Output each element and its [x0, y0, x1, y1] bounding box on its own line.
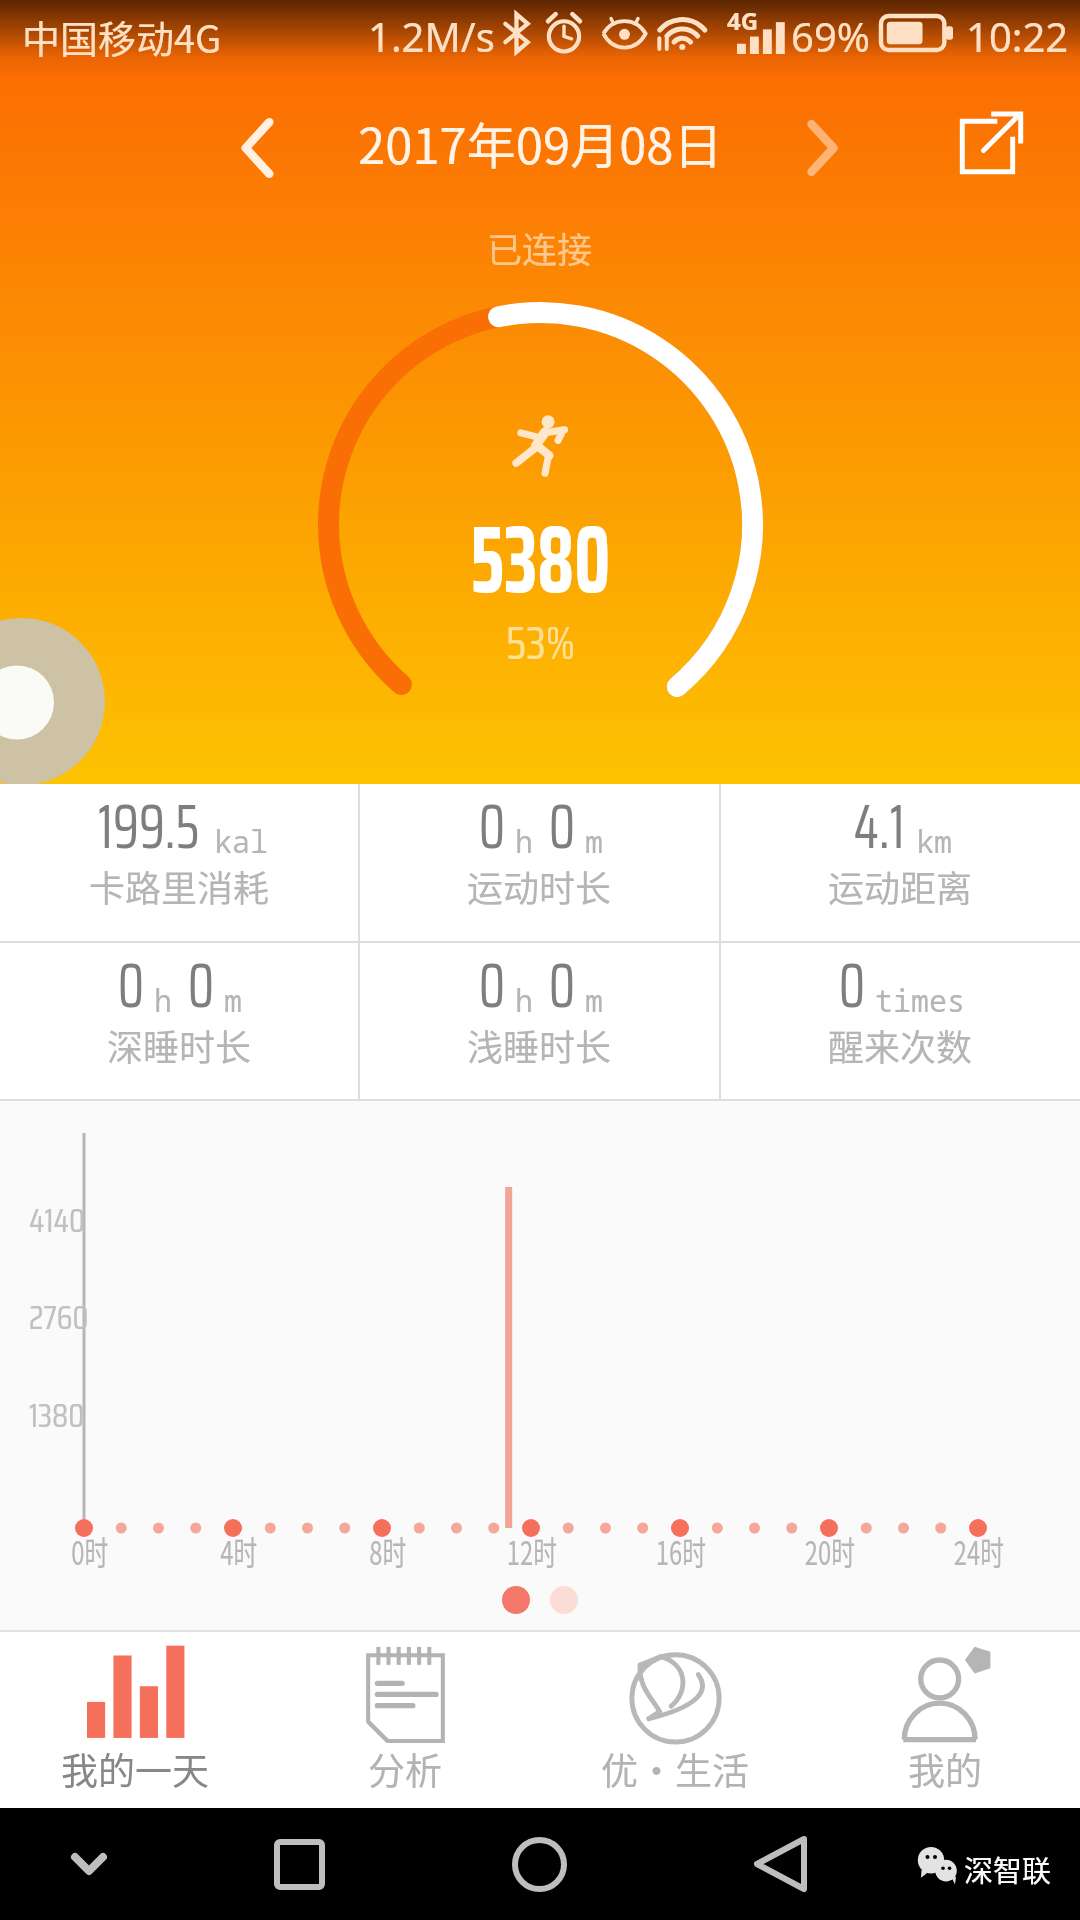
button[interactable]: 0 — [360, 943, 719, 1041]
staticText: 深智联 — [964, 1848, 1052, 1890]
staticText: 0 — [549, 778, 576, 876]
staticText: kal — [214, 821, 268, 862]
button[interactable]: 0 — [360, 784, 719, 882]
staticText: h — [515, 980, 533, 1021]
button[interactable]: Page 1 — [502, 1586, 530, 1614]
button[interactable]: Hide keyboard — [39, 1814, 139, 1914]
staticText: 69% — [791, 9, 870, 63]
staticText: 已连接 — [487, 222, 593, 273]
button[interactable]: Recents — [249, 1814, 349, 1914]
staticText: 20时 — [805, 1527, 855, 1575]
button[interactable]: Back — [730, 1814, 830, 1914]
staticText: 24时 — [954, 1527, 1004, 1575]
button[interactable]: 0 — [0, 943, 358, 1041]
staticText: 12时 — [507, 1527, 557, 1575]
staticText: 运动距离 — [828, 860, 973, 912]
staticText: 8时 — [369, 1527, 407, 1575]
staticText: 2017年09月08日 — [358, 107, 723, 178]
staticText: 运动时长 — [467, 860, 612, 912]
staticText: 醒来次数 — [828, 1019, 973, 1071]
staticText: 分析 — [368, 1742, 442, 1796]
staticText: 卡路里消耗 — [89, 860, 270, 912]
button[interactable]: 优·生活 — [540, 1632, 810, 1808]
staticText: m — [585, 821, 603, 862]
staticText: 0 — [549, 937, 576, 1035]
staticText: m — [585, 980, 603, 1021]
staticText: 0 — [839, 937, 866, 1035]
staticText: 1380 — [29, 1390, 85, 1442]
button[interactable]: Previous day — [205, 96, 309, 200]
staticText: m — [224, 980, 242, 1021]
staticText: 16时 — [656, 1527, 706, 1575]
button[interactable]: 4.1 — [721, 784, 1080, 882]
button[interactable]: 0 — [721, 943, 1080, 1041]
button[interactable]: Share — [932, 91, 1042, 201]
staticText: h — [154, 980, 172, 1021]
staticText: 4140 — [29, 1195, 85, 1247]
staticText: 4时 — [220, 1527, 258, 1575]
staticText: times — [875, 980, 965, 1021]
staticText: 我的一天 — [61, 1742, 209, 1796]
staticText: km — [916, 821, 952, 862]
staticText: 深睡时长 — [107, 1019, 252, 1071]
button[interactable]: 我的 — [810, 1632, 1080, 1808]
staticText: 4.1 — [853, 778, 905, 876]
staticText: 0时 — [71, 1527, 109, 1575]
staticText: 0 — [188, 937, 215, 1035]
staticText: 0 — [118, 937, 145, 1035]
button[interactable]: WeChat 深智联 — [908, 1838, 996, 1880]
staticText: 4G — [727, 4, 759, 37]
staticText: h — [515, 821, 533, 862]
button[interactable]: 分析 — [270, 1632, 540, 1808]
staticText: 2760 — [29, 1292, 89, 1344]
staticText: 浅睡时长 — [467, 1019, 612, 1071]
button[interactable]: 我的一天 — [0, 1632, 270, 1808]
staticText: 优·生活 — [601, 1742, 749, 1796]
staticText: 0 — [479, 937, 506, 1035]
staticText: 199.5 — [98, 778, 200, 876]
staticText: 0 — [479, 778, 506, 876]
button[interactable]: Next day — [770, 96, 874, 200]
staticText: 中国移动4G — [22, 9, 222, 64]
staticText: 1.2M/s — [368, 9, 495, 63]
button[interactable]: Page 2 — [550, 1586, 578, 1614]
button[interactable]: Home — [489, 1814, 589, 1914]
staticText: 10:22 — [966, 9, 1069, 63]
button[interactable]: 199.5 — [0, 784, 358, 882]
staticText: 53% — [506, 607, 575, 679]
staticText: 5380 — [470, 484, 611, 634]
staticText: 我的 — [908, 1742, 982, 1796]
